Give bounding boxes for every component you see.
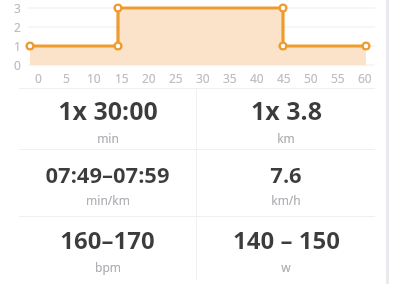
staticText: 35 — [223, 70, 237, 86]
staticText: 2 — [14, 19, 21, 35]
staticText: 1 — [14, 38, 21, 54]
staticText: 30 — [196, 70, 210, 86]
staticText: 20 — [142, 70, 156, 86]
staticText: 40 — [250, 70, 264, 86]
staticText: km/h — [271, 192, 301, 208]
staticText: bpm — [95, 259, 121, 275]
staticText: 7.6 — [270, 159, 302, 189]
staticText: 0 — [14, 57, 21, 73]
staticText: 50 — [304, 70, 318, 86]
staticText: km — [277, 130, 295, 146]
staticText: 5 — [63, 70, 70, 86]
staticText: 25 — [169, 70, 183, 86]
staticText: 160–170 — [60, 223, 155, 256]
button[interactable]: 140 – 150 — [197, 217, 375, 280]
staticText: min — [97, 130, 119, 146]
staticText: 0 — [35, 70, 42, 86]
staticText: 140 – 150 — [233, 223, 340, 256]
button[interactable]: 160–170 — [19, 217, 196, 280]
staticText: 1x 30:00 — [58, 93, 158, 127]
button[interactable]: 1x 30:00 — [19, 89, 196, 149]
staticText: min/km — [86, 192, 130, 208]
staticText: 3 — [14, 0, 21, 16]
staticText: 10 — [87, 70, 101, 86]
staticText: 1x 3.8 — [251, 93, 322, 127]
staticText: w — [281, 259, 291, 275]
staticText: 55 — [331, 70, 345, 86]
staticText: 60 — [358, 70, 372, 86]
button[interactable]: 1x 3.8 — [197, 89, 375, 149]
button[interactable]: 07:49–07:59 — [19, 150, 196, 216]
staticText: 07:49–07:59 — [45, 159, 170, 189]
staticText: 45 — [277, 70, 291, 86]
button[interactable]: 7.6 — [197, 150, 375, 216]
staticText: 15 — [115, 70, 129, 86]
